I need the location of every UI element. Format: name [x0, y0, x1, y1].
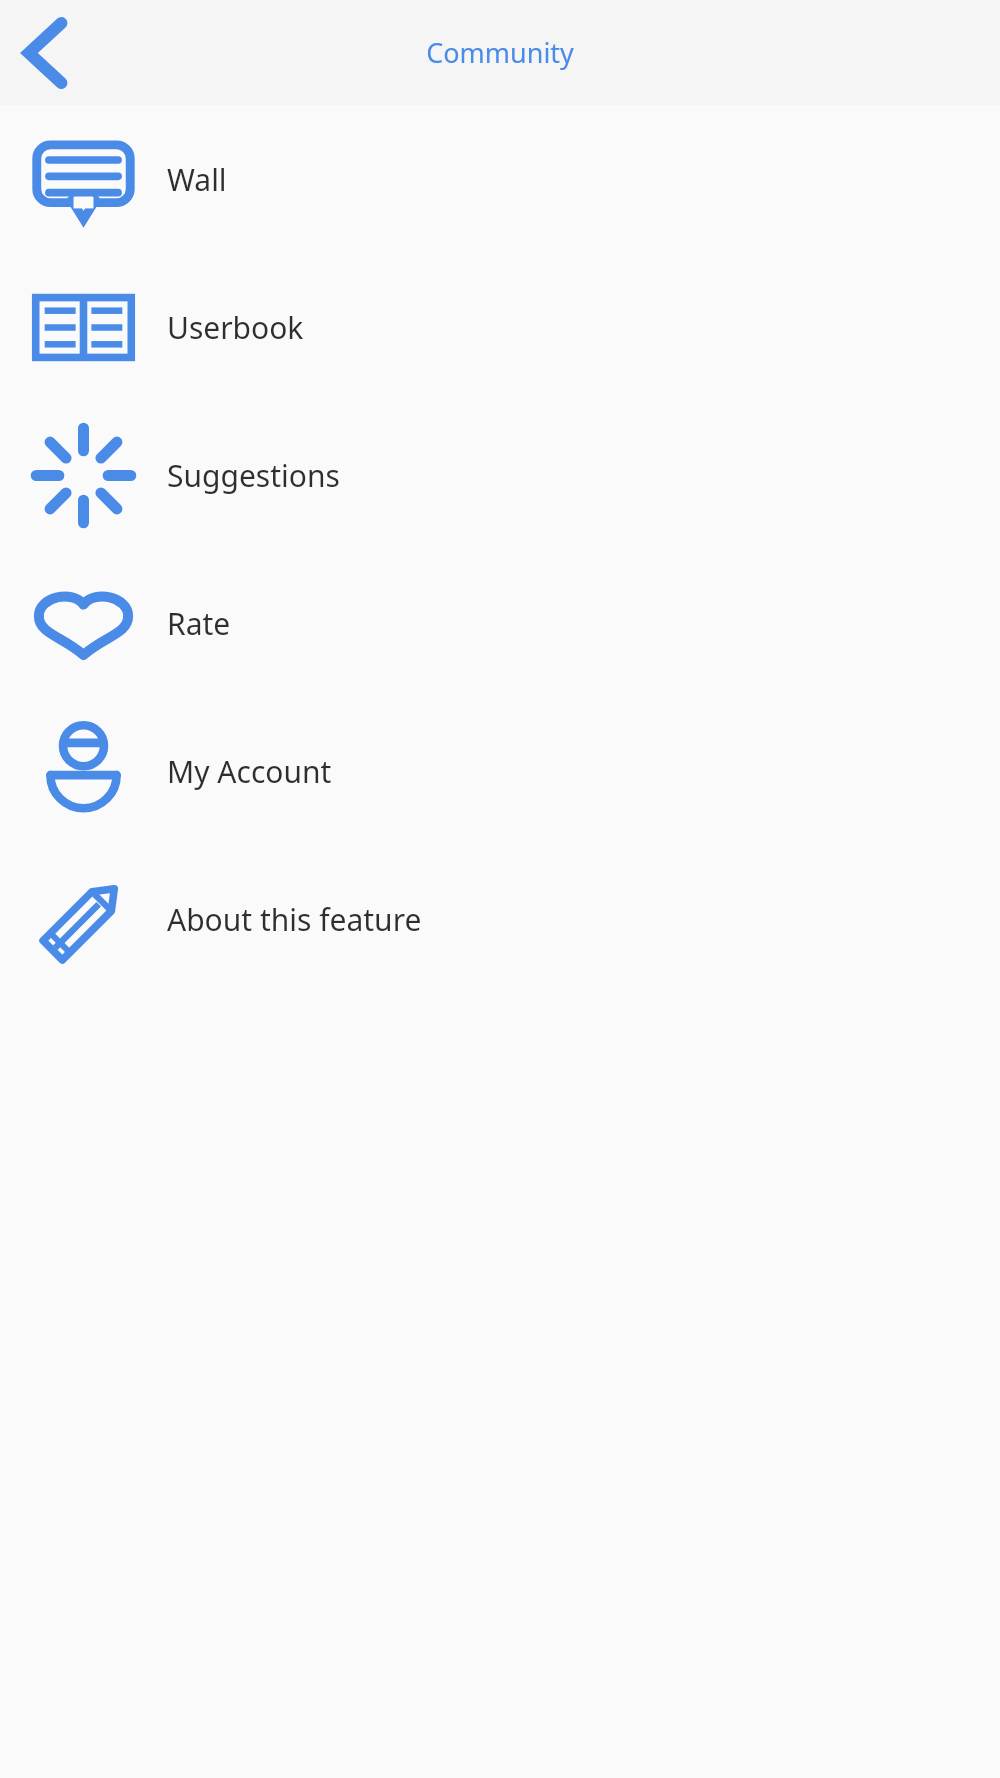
staticText: Community [0, 34, 1000, 71]
button[interactable]: Back [0, 10, 86, 96]
staticText: My Account [167, 751, 332, 792]
staticText: About this feature [167, 899, 422, 940]
staticText: Suggestions [167, 455, 340, 496]
staticText: Userbook [167, 307, 304, 348]
button[interactable]: About this feature [0, 845, 1000, 993]
button[interactable]: My Account [0, 697, 1000, 845]
button[interactable]: Wall [0, 105, 1000, 253]
button[interactable]: Userbook [0, 253, 1000, 401]
button[interactable]: Suggestions [0, 401, 1000, 549]
button[interactable]: Rate [0, 549, 1000, 697]
staticText: Rate [167, 603, 231, 644]
staticText: Wall [167, 159, 227, 200]
